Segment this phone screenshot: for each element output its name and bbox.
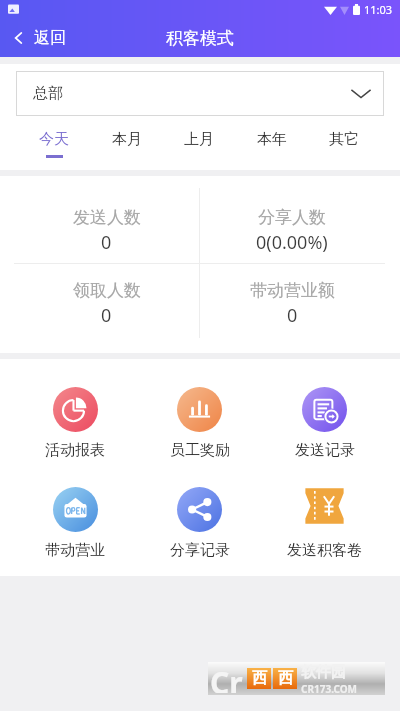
button[interactable]: 带动营业	[13, 485, 137, 562]
staticText: 领取人数	[73, 280, 141, 301]
staticText: 返回	[34, 28, 66, 48]
button[interactable]: 发送积客卷	[262, 485, 387, 562]
button[interactable]: 领取人数	[14, 264, 199, 353]
staticText: 0(0.00%)	[256, 230, 328, 255]
button[interactable]: 其它	[322, 130, 366, 158]
staticText: 11:03	[364, 2, 393, 17]
button[interactable]: 分享记录	[137, 485, 262, 562]
button[interactable]: 总部	[16, 71, 384, 116]
staticText: CR173.COM	[301, 682, 358, 694]
staticText: 积客模式	[166, 28, 234, 49]
staticText: 上月	[184, 130, 214, 149]
staticText: 发送积客卷	[287, 541, 362, 560]
staticText: 活动报表	[45, 441, 105, 460]
staticText: 软件园	[301, 663, 346, 682]
staticText: 本月	[112, 130, 142, 149]
button[interactable]: 带动营业额	[199, 264, 385, 353]
staticText: 发送人数	[73, 207, 141, 228]
staticText: 总部	[33, 84, 63, 103]
button[interactable]: 分享人数	[199, 176, 385, 263]
button[interactable]: 本年	[250, 130, 294, 158]
button[interactable]: 发送人数	[14, 176, 199, 263]
staticText: 带动营业额	[250, 280, 335, 301]
button[interactable]: 返回	[0, 23, 78, 53]
button[interactable]: 发送记录	[262, 385, 387, 462]
staticText: 0	[101, 230, 112, 255]
button[interactable]: 活动报表	[13, 385, 137, 462]
staticText: 0	[101, 303, 112, 328]
staticText: 0	[287, 303, 298, 328]
staticText: 发送记录	[295, 441, 355, 460]
button[interactable]: 员工奖励	[137, 385, 262, 462]
staticText: 本年	[257, 130, 287, 149]
staticText: 分享记录	[170, 541, 230, 560]
staticText: 带动营业	[45, 541, 105, 560]
staticText: 今天	[39, 130, 69, 149]
staticText: 西	[252, 669, 267, 688]
staticText: 其它	[329, 130, 359, 149]
button[interactable]: 上月	[177, 130, 221, 158]
staticText: 西	[278, 669, 293, 688]
staticText: 分享人数	[258, 207, 326, 228]
button[interactable]: 今天	[32, 130, 76, 158]
staticText: 员工奖励	[170, 441, 230, 460]
button[interactable]: 本月	[105, 130, 149, 158]
staticText: Cr	[210, 662, 243, 693]
